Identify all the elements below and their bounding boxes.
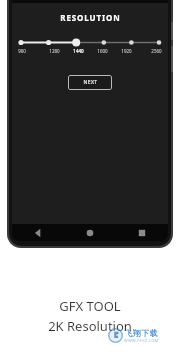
button[interactable]: Home <box>64 224 116 241</box>
staticText: RESOLUTION <box>60 12 121 23</box>
button[interactable]: 1440 <box>66 48 90 54</box>
button[interactable]: Back <box>12 224 64 241</box>
staticText: 2560 <box>151 48 162 54</box>
staticText: GFX TOOL <box>59 297 121 315</box>
button[interactable]: Recent apps <box>116 224 168 241</box>
staticText: 1920 <box>121 48 132 54</box>
staticText: 1280 <box>49 48 60 54</box>
staticText: 1600 <box>97 48 108 54</box>
button[interactable]: 2560 <box>138 48 162 54</box>
staticText: 1440 <box>73 48 84 54</box>
staticText: 飞翔下载 <box>124 328 158 338</box>
staticText: 960 <box>18 48 26 54</box>
staticText: WWW.FXXZ.COM <box>124 338 159 343</box>
staticText: NEXT <box>83 79 98 86</box>
button[interactable]: 960 <box>18 48 42 54</box>
button[interactable]: 1600 <box>90 48 114 54</box>
button[interactable]: NEXT <box>68 75 112 90</box>
button[interactable]: 1280 <box>42 48 66 54</box>
staticText: 2K Resolution <box>48 317 132 335</box>
button[interactable]: 1920 <box>114 48 138 54</box>
